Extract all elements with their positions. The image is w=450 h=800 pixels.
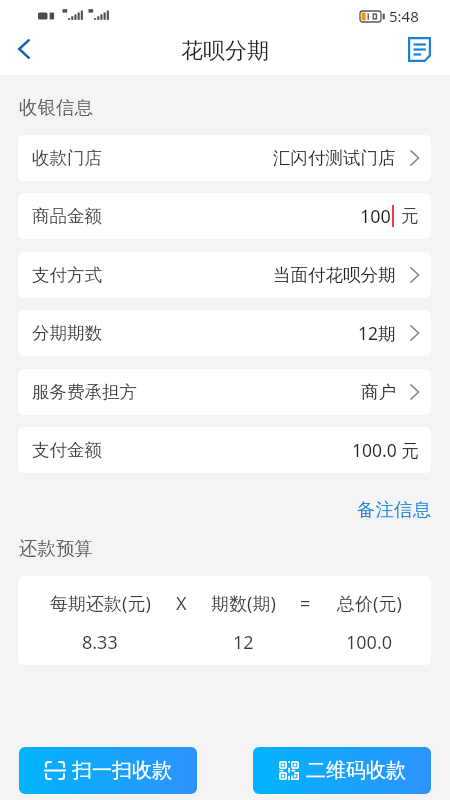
button[interactable]: 分期期数 xyxy=(18,310,431,356)
staticText: 支付方式 xyxy=(32,264,102,286)
staticText: 100.0 元 xyxy=(352,438,419,462)
button[interactable]: 备注信息 xyxy=(349,494,439,525)
staticText: 总价(元) xyxy=(337,591,402,613)
staticText: = xyxy=(300,591,311,613)
staticText: 二维码收款 xyxy=(306,758,406,783)
staticText: 支付金额 xyxy=(32,439,102,461)
staticText: 元 xyxy=(401,205,419,227)
staticText: X xyxy=(176,591,187,613)
staticText: 12期 xyxy=(358,321,396,345)
staticText: 收款门店 xyxy=(32,147,102,169)
staticText: 分期期数 xyxy=(32,322,102,344)
staticText: 花呗分期 xyxy=(181,37,269,65)
staticText: 商户 xyxy=(361,381,396,403)
button[interactable]: Back xyxy=(0,30,46,75)
button[interactable]: 支付金额 xyxy=(18,427,431,473)
staticText: 当面付花呗分期 xyxy=(273,264,396,286)
staticText: 100.0 xyxy=(346,630,393,652)
staticText: 汇闪付测试门店 xyxy=(273,147,396,169)
staticText: 12 xyxy=(233,630,254,652)
button[interactable]: 二维码收款 xyxy=(253,747,431,794)
staticText: 服务费承担方 xyxy=(32,381,137,403)
staticText: 商品金额 xyxy=(32,205,102,227)
staticText: 还款预算 xyxy=(19,537,93,560)
staticText: 5:48 xyxy=(389,6,419,26)
staticText: 8.33 xyxy=(82,630,118,652)
staticText: 收银信息 xyxy=(19,96,93,119)
staticText: 期数(期) xyxy=(211,591,276,613)
staticText: 每期还款(元) xyxy=(50,591,151,613)
button[interactable]: 收款门店 xyxy=(18,135,431,181)
button[interactable]: 商品金额 xyxy=(18,193,431,239)
button[interactable]: 服务费承担方 xyxy=(18,369,431,415)
button[interactable]: 扫一扫收款 xyxy=(19,747,197,794)
staticText: 100 xyxy=(360,204,391,229)
staticText: 备注信息 xyxy=(357,498,431,521)
staticText: 扫一扫收款 xyxy=(72,758,172,783)
button[interactable]: Order records xyxy=(398,30,442,75)
button[interactable]: 支付方式 xyxy=(18,252,431,298)
